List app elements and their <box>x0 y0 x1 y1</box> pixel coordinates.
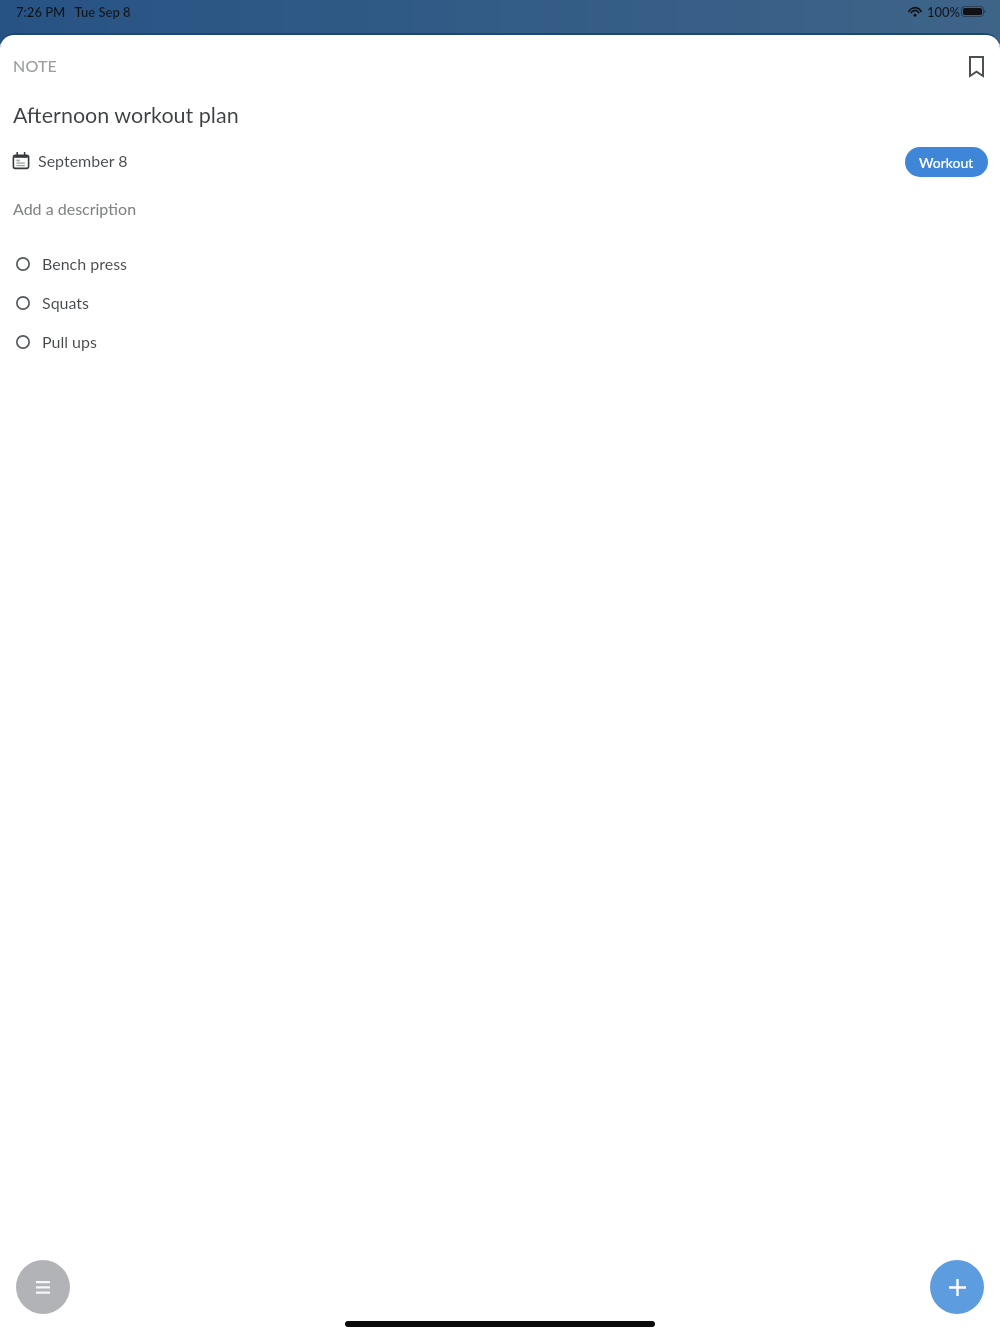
staticText: Bench press <box>42 254 128 273</box>
button[interactable]: Workout <box>905 147 988 177</box>
staticText: Afternoon workout plan <box>13 102 239 128</box>
button[interactable]: Squats <box>0 283 1000 322</box>
staticText: Workout <box>919 154 974 171</box>
staticText: Pull ups <box>42 332 97 351</box>
staticText: 7:26 PM Tue Sep 8 <box>16 4 131 20</box>
button[interactable]: Menu <box>16 1260 70 1314</box>
staticText: 100% <box>927 4 961 20</box>
button[interactable]: Pull ups <box>0 322 1000 361</box>
button[interactable]: Bench press <box>0 244 1000 283</box>
button[interactable]: Add note <box>930 1260 984 1314</box>
staticText: Add a description <box>13 199 137 218</box>
staticText: Squats <box>42 293 90 312</box>
button[interactable]: September 8 <box>12 146 128 174</box>
staticText: NOTE <box>13 56 57 75</box>
staticText: September 8 <box>38 151 128 170</box>
button[interactable]: Bookmark <box>954 44 999 89</box>
